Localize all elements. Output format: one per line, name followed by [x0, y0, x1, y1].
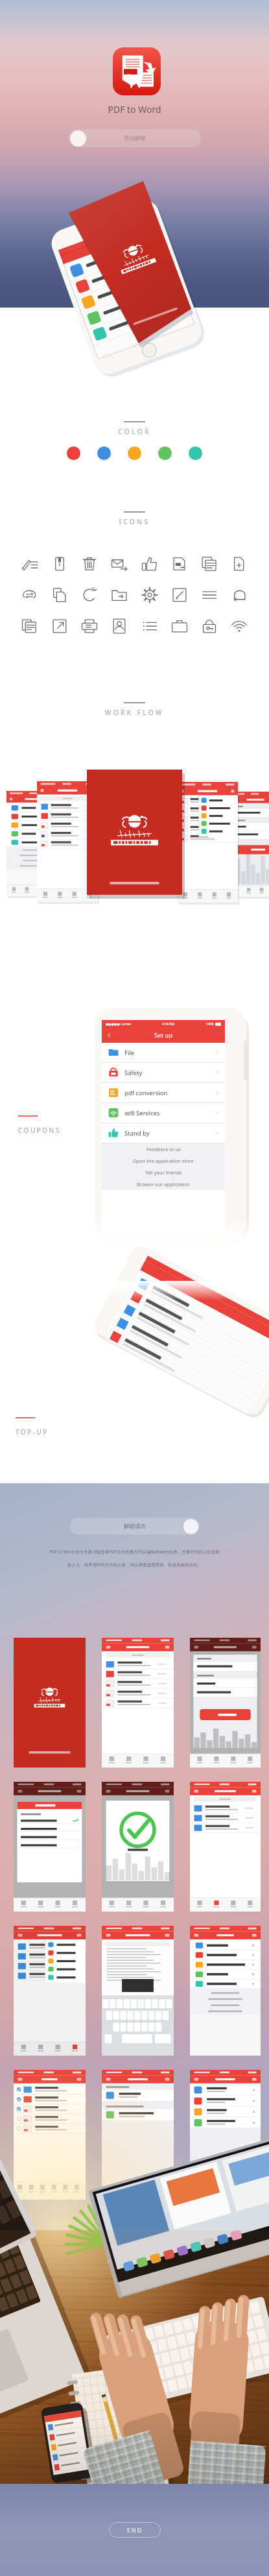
button[interactable]: icon 19	[81, 618, 98, 635]
staticText: Open the application store	[133, 1158, 194, 1164]
button[interactable]: Browse our application	[102, 1178, 225, 1190]
button[interactable]: wifi Services	[102, 1103, 225, 1123]
button[interactable]: 解锁成功	[70, 1518, 200, 1535]
button[interactable]: icon 17	[21, 618, 38, 635]
staticText: PDF to Word 软件主要功能是将PDF文件转换为可以编辑的word文档，…	[0, 1549, 269, 1555]
button[interactable]: icon 5	[141, 555, 158, 572]
button[interactable]: icon 20	[111, 618, 128, 635]
button[interactable]: icon 18	[51, 618, 68, 635]
button[interactable]	[14, 1926, 86, 2056]
button[interactable]	[190, 1638, 261, 1768]
staticText: 4:34 PM	[162, 1022, 174, 1027]
button[interactable]: File	[102, 1043, 225, 1062]
button[interactable]: Safety	[102, 1063, 225, 1082]
button[interactable]: icon 1	[21, 555, 38, 572]
button[interactable]: icon 21	[141, 618, 158, 635]
button[interactable]	[102, 1926, 174, 2056]
button[interactable]: icon 24	[231, 618, 248, 635]
button[interactable]: icon 6	[171, 555, 188, 572]
button[interactable]: icon 10	[51, 587, 68, 603]
button[interactable]	[102, 1782, 174, 1912]
button[interactable]: icon 2	[51, 555, 68, 572]
staticText: Feedback to us	[146, 1146, 181, 1152]
button[interactable]: PDF to Word app icon	[113, 47, 161, 95]
staticText: wifi Services	[124, 1109, 160, 1117]
button[interactable]	[14, 1782, 86, 1912]
button[interactable]	[102, 1638, 174, 1768]
button[interactable]: pdf conversion	[102, 1083, 225, 1102]
button[interactable]: icon 23	[201, 618, 218, 635]
button[interactable]: icon 11	[81, 587, 98, 603]
staticText: ●●●●● Carrier	[106, 1022, 132, 1027]
staticText: 100%	[205, 1022, 214, 1027]
button[interactable]	[102, 2070, 174, 2200]
button[interactable]: Back	[106, 1032, 112, 1038]
button[interactable]: Tell your friends	[102, 1167, 225, 1178]
button[interactable]: icon 14	[171, 587, 188, 603]
staticText: Tell your friends	[145, 1169, 182, 1176]
staticText: 务人士，经常用PDF文件的人群，所以界面选用简单、快速高效的方式。	[0, 1562, 269, 1568]
button[interactable]: Stand by	[102, 1123, 225, 1143]
button[interactable]	[14, 1638, 86, 1768]
button[interactable]	[190, 1926, 261, 2056]
staticText: File	[124, 1049, 135, 1057]
button[interactable]: icon 22	[171, 618, 188, 635]
staticText: pdf conversion	[124, 1089, 168, 1097]
staticText: PDF to Word	[0, 103, 269, 115]
staticText: TOP-UP	[16, 1428, 49, 1437]
button[interactable]	[14, 2070, 86, 2200]
button[interactable]: icon 3	[81, 555, 98, 572]
button[interactable]: icon 7	[201, 555, 218, 572]
staticText: END	[127, 2526, 143, 2534]
button[interactable]: icon 8	[231, 555, 248, 572]
button[interactable]: icon 9	[21, 587, 38, 603]
button[interactable]: Feedback to us	[102, 1143, 225, 1155]
button[interactable]: 滑动解锁	[69, 129, 201, 147]
button[interactable]: icon 13	[141, 587, 158, 603]
staticText: WORK FLOW	[0, 708, 269, 717]
staticText: Safety	[124, 1069, 143, 1077]
staticText: 解锁成功	[124, 1523, 146, 1530]
button[interactable]: icon 4	[111, 555, 128, 572]
staticText: ICONS	[0, 517, 269, 526]
staticText: COUPONS	[18, 1126, 61, 1135]
staticText: Stand by	[124, 1129, 150, 1137]
staticText: 滑动解锁	[124, 135, 146, 142]
button[interactable]	[190, 2070, 261, 2200]
button[interactable]: icon 16	[231, 587, 248, 603]
staticText: COLOR	[0, 427, 269, 436]
button[interactable]	[190, 1782, 261, 1912]
button[interactable]: END	[109, 2522, 161, 2538]
button[interactable]: icon 12	[111, 587, 128, 603]
staticText: Set up	[154, 1031, 173, 1039]
staticText: Browse our application	[137, 1181, 190, 1187]
button[interactable]: Open the application store	[102, 1155, 225, 1167]
button[interactable]: icon 15	[201, 587, 218, 603]
